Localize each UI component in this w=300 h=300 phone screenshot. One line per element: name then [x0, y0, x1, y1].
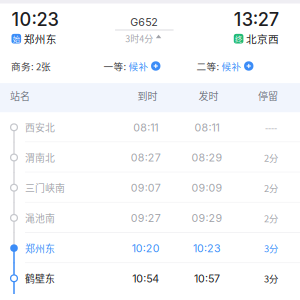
staticText: 3分: [264, 241, 278, 255]
staticText: 08:27: [131, 151, 161, 164]
staticText: 一等:: [103, 59, 126, 73]
staticText: 二等:: [197, 59, 220, 73]
staticText: 08:11: [133, 121, 158, 134]
staticText: 始: [13, 33, 20, 44]
button[interactable]: 西安北: [0, 112, 300, 142]
staticText: 候补: [129, 59, 149, 73]
staticText: 10:23: [11, 8, 58, 30]
staticText: 2分: [264, 211, 278, 225]
staticText: 鹤壁东: [25, 271, 55, 285]
staticText: 郑州东: [25, 241, 55, 255]
staticText: ----: [265, 121, 277, 134]
staticText: 10:57: [194, 272, 220, 285]
button[interactable]: 鹤壁东: [0, 263, 300, 293]
staticText: 2分: [264, 181, 278, 195]
staticText: 北京西: [246, 31, 279, 46]
staticText: 08:11: [194, 121, 219, 134]
staticText: 09:07: [131, 181, 161, 194]
staticText: 09:27: [131, 212, 161, 224]
staticText: 西安北: [25, 120, 55, 134]
button[interactable]: 三门峡南: [0, 173, 300, 203]
staticText: 候补: [222, 59, 242, 73]
staticText: 商务: 2张: [11, 59, 51, 73]
staticText: 终: [235, 33, 242, 44]
button[interactable]: 二等:: [197, 59, 253, 73]
staticText: 站名: [10, 88, 30, 103]
button[interactable]: 渑池南: [0, 203, 300, 233]
staticText: 3分: [264, 272, 278, 285]
staticText: 10:54: [132, 272, 159, 285]
staticText: 3时4分: [125, 32, 153, 45]
staticText: 2分: [264, 151, 278, 164]
staticText: 停留: [258, 88, 278, 103]
staticText: G652: [130, 16, 158, 29]
staticText: 发时: [198, 88, 218, 103]
staticText: 三门峡南: [25, 181, 65, 195]
staticText: 渭南北: [25, 150, 55, 165]
staticText: 渑池南: [25, 211, 55, 225]
staticText: 10:20: [132, 242, 160, 255]
button[interactable]: 郑州东: [0, 233, 300, 263]
button[interactable]: 一等:: [103, 59, 160, 73]
staticText: 08:29: [191, 151, 222, 164]
staticText: 到时: [137, 88, 157, 103]
staticText: 10:23: [193, 242, 221, 255]
button[interactable]: 渭南北: [0, 142, 300, 173]
staticText: 09:29: [191, 212, 222, 224]
staticText: 郑州东: [24, 31, 57, 46]
staticText: 09:09: [191, 181, 222, 194]
staticText: 13:27: [234, 8, 279, 30]
